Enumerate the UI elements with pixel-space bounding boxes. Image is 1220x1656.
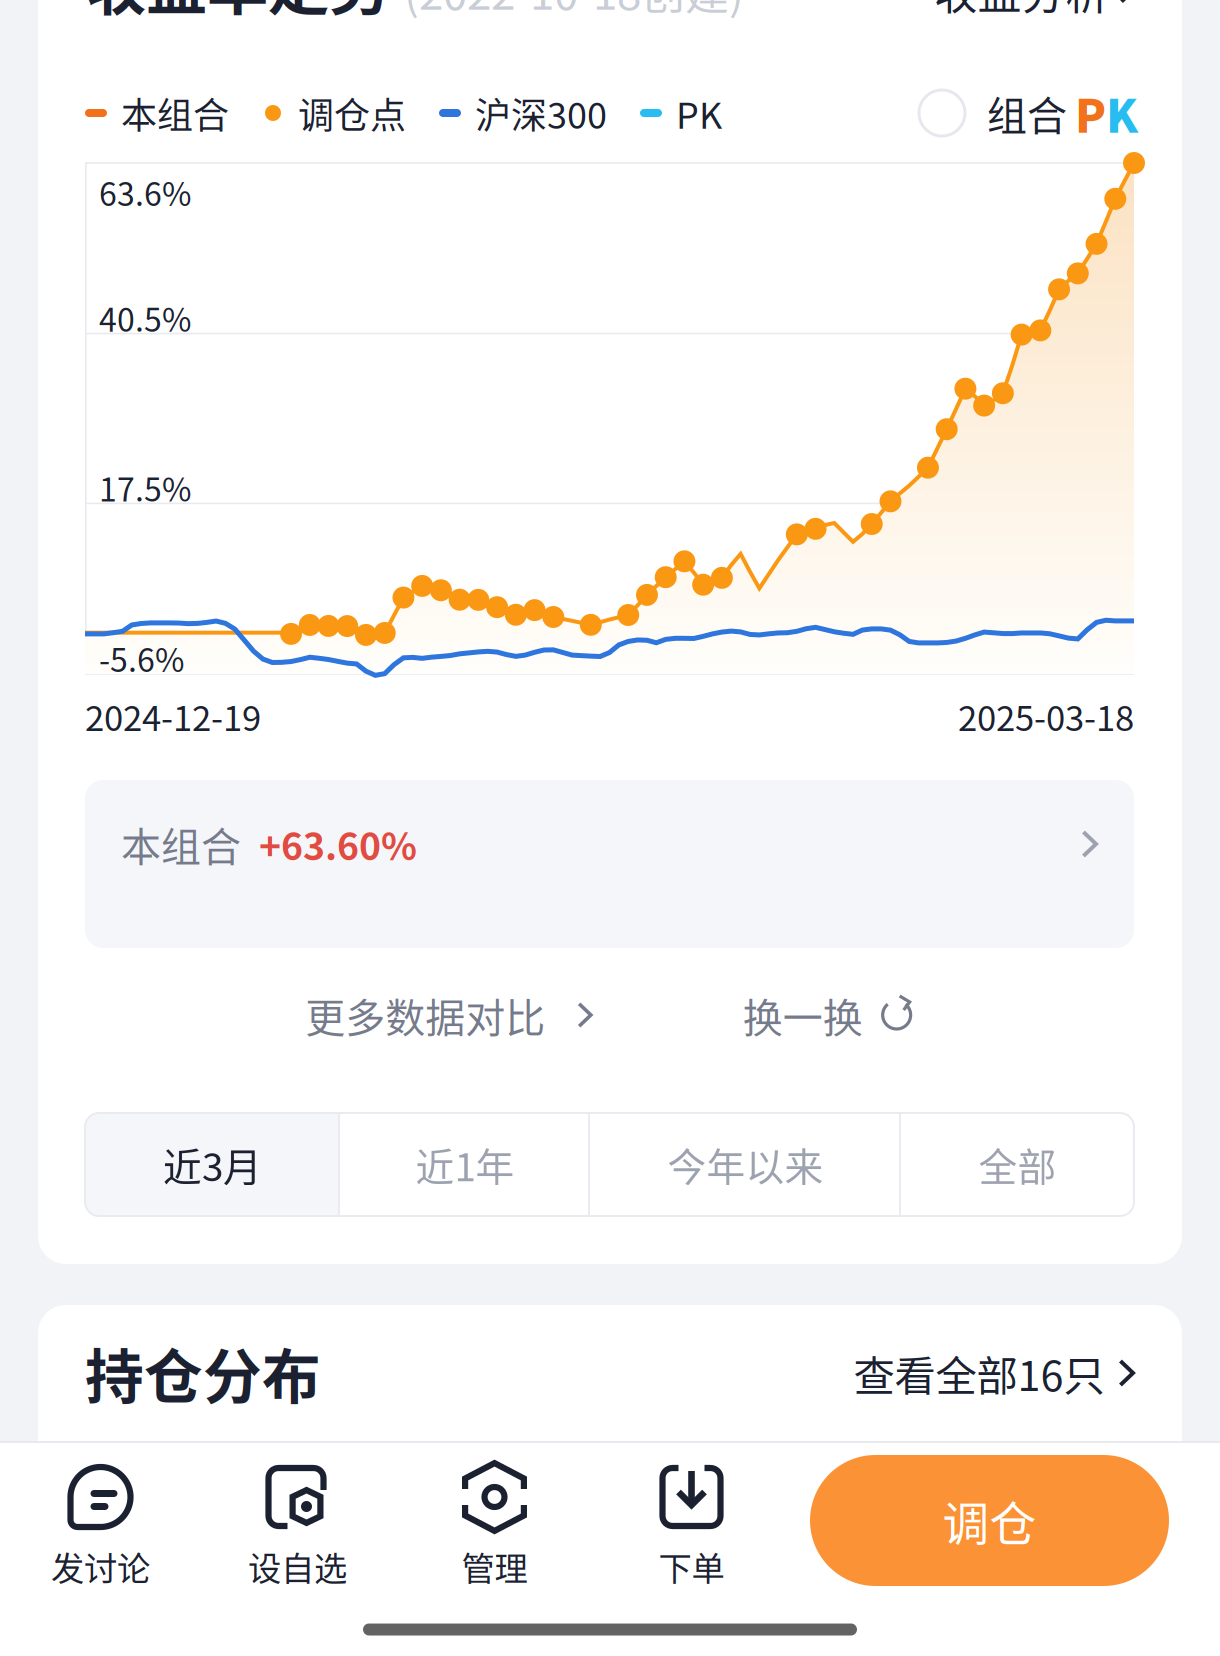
button[interactable]: 调仓 (810, 1455, 1169, 1586)
staticText: 2025-03-18 (958, 691, 1134, 741)
button[interactable]: 全部 (901, 1113, 1134, 1216)
button[interactable]: 下单 (593, 1443, 790, 1624)
staticText: 收益分析 (933, 0, 1109, 22)
staticText: 设自选 (248, 1542, 347, 1590)
staticText: 全部 (978, 1136, 1056, 1192)
button[interactable]: 换一换 (743, 986, 915, 1044)
button[interactable]: 更多数据对比 (305, 986, 593, 1044)
staticText: 今年以来 (667, 1136, 823, 1192)
staticText: K (1106, 80, 1138, 146)
staticText: 17.5% (99, 464, 191, 511)
button[interactable]: 本组合 (85, 780, 1134, 948)
button[interactable]: 组合 (919, 80, 1138, 146)
button[interactable]: 近3月 (85, 1113, 340, 1216)
button[interactable]: 查看全部16只 (853, 1343, 1135, 1403)
staticText: 本组合 (121, 87, 229, 139)
staticText: 63.6% (99, 169, 191, 215)
staticText: 下单 (658, 1542, 724, 1590)
staticText: PK (676, 87, 722, 139)
staticText: (2022-10-18创建) (404, 0, 744, 22)
staticText: 发讨论 (51, 1542, 150, 1590)
staticText: P (1075, 80, 1106, 146)
staticText: 调仓点 (298, 87, 406, 139)
staticText: 近3月 (163, 1136, 262, 1192)
staticText: +63.60% (259, 817, 417, 871)
button[interactable]: 今年以来 (590, 1113, 901, 1216)
staticText: 收益率走势 (85, 0, 390, 27)
staticText: 近1年 (415, 1136, 514, 1192)
staticText: 本组合 (121, 815, 241, 873)
staticText: 管理 (461, 1542, 527, 1590)
button[interactable]: 管理 (396, 1443, 593, 1624)
staticText: 组合 (987, 84, 1067, 142)
staticText: -5.6% (99, 635, 184, 681)
staticText: 调仓 (942, 1487, 1036, 1554)
staticText: 2024-12-19 (85, 691, 261, 741)
button[interactable]: 发讨论 (2, 1443, 199, 1624)
staticText: 换一换 (743, 986, 863, 1044)
button[interactable]: 收益分析 (933, 0, 1135, 22)
staticText: 持仓分布 (85, 1330, 321, 1415)
staticText: 沪深300 (475, 87, 607, 139)
staticText: 查看全部16只 (853, 1343, 1104, 1403)
button[interactable]: 设自选 (199, 1443, 396, 1624)
staticText: 40.5% (99, 295, 191, 341)
staticText: 更多数据对比 (305, 986, 545, 1044)
button[interactable]: 近1年 (340, 1113, 590, 1216)
